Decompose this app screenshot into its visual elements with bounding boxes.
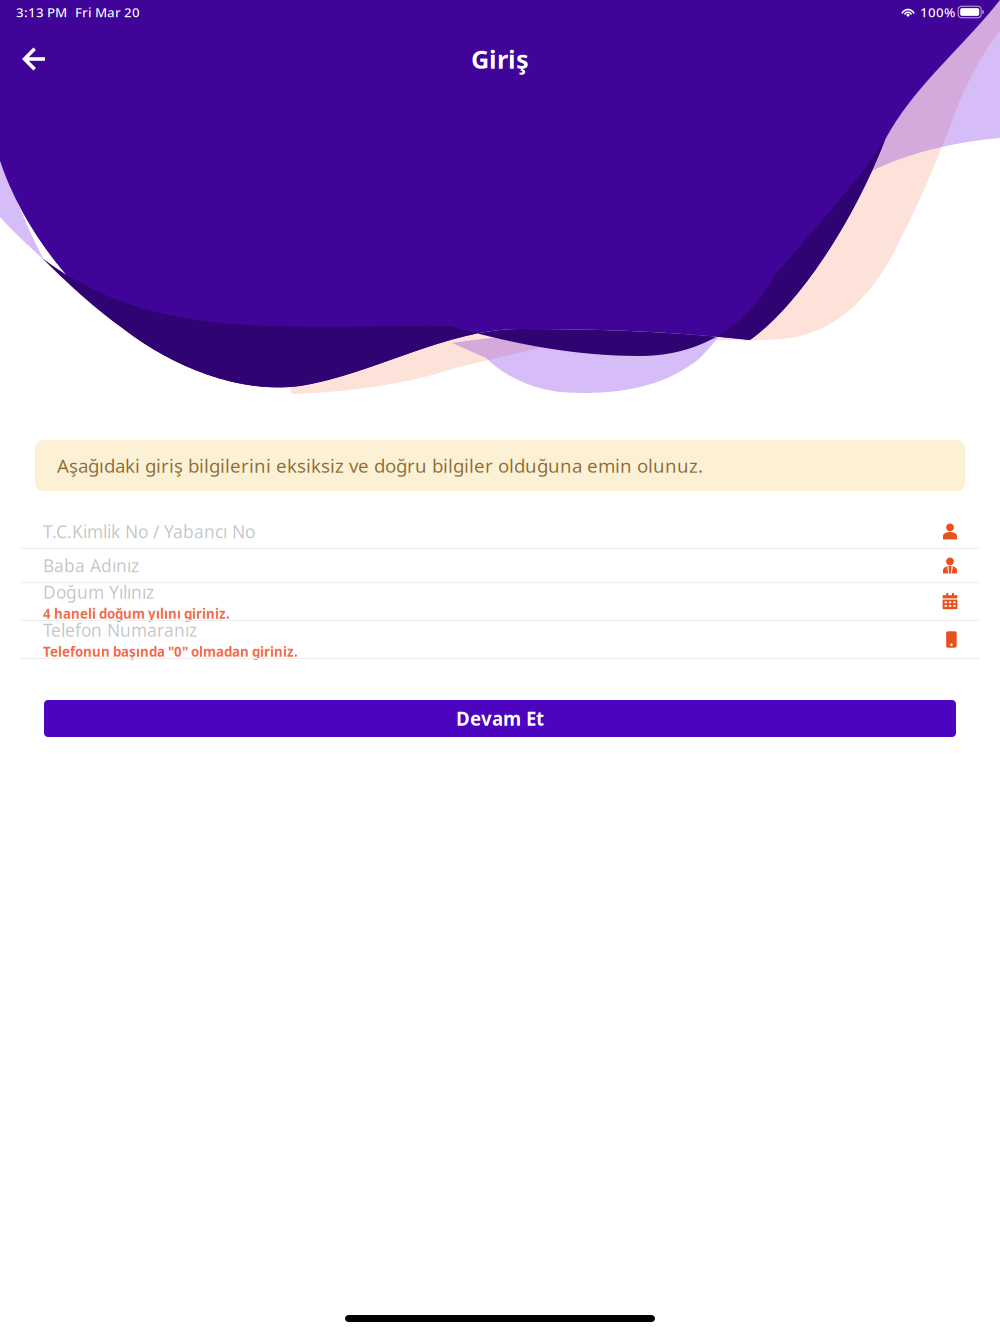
- staticText: Aşağıdaki giriş bilgilerini eksiksiz ve …: [57, 453, 703, 478]
- button[interactable]: Baba Adınız: [20, 549, 980, 583]
- staticText: Doğum Yılınız: [43, 581, 154, 604]
- button[interactable]: Doğum Yılınız: [20, 583, 980, 621]
- staticText: 100%: [920, 3, 955, 21]
- staticText: Telefonun başında "0" olmadan giriniz.: [43, 643, 298, 660]
- staticText: T.C.Kimlik No / Yabancı No: [43, 520, 255, 543]
- staticText: Fri Mar 20: [75, 3, 140, 21]
- staticText: Baba Adınız: [43, 554, 139, 577]
- button[interactable]: Devam Et: [44, 700, 956, 737]
- button[interactable]: Telefon Numaranız: [20, 621, 980, 659]
- staticText: Giriş: [471, 42, 529, 76]
- staticText: 3:13 PM: [16, 3, 67, 21]
- button[interactable]: T.C.Kimlik No / Yabancı No: [20, 515, 980, 549]
- staticText: Telefon Numaranız: [43, 619, 197, 642]
- staticText: 4 haneli doğum yılını giriniz.: [43, 605, 230, 622]
- staticText: Devam Et: [456, 706, 544, 731]
- button[interactable]: Back: [12, 37, 56, 81]
